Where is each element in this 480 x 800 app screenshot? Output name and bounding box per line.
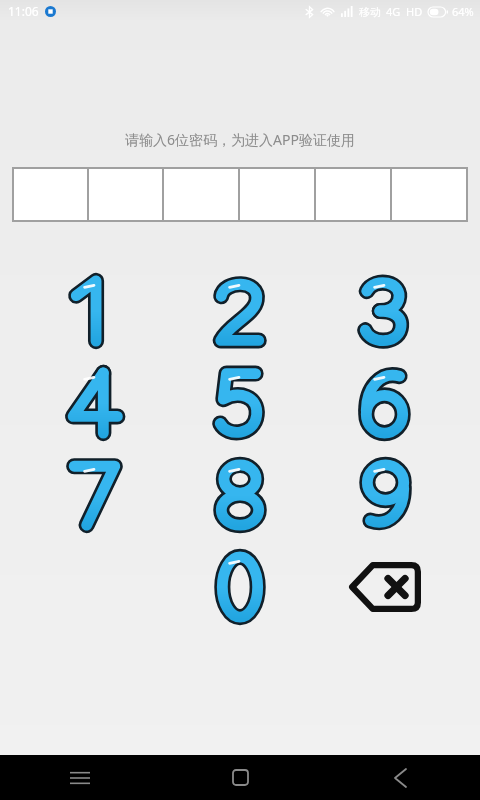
staticText: HD [406,4,423,19]
button[interactable] [13,168,88,221]
button[interactable] [239,168,315,221]
button[interactable]: Backspace [337,541,433,633]
staticText: 64% [452,4,474,19]
staticText: 11:06 [8,3,39,19]
button[interactable]: Back [320,755,480,800]
staticText: 请输入6位密码，为进入APP验证使用 [125,130,355,149]
button[interactable] [337,265,433,357]
button[interactable]: Home [160,755,320,800]
button[interactable] [337,449,433,541]
button[interactable] [192,265,288,357]
button[interactable] [47,357,143,449]
button[interactable] [391,168,467,221]
staticText: 移动 [359,5,381,19]
button[interactable] [47,449,143,541]
button[interactable] [192,357,288,449]
button[interactable] [337,357,433,449]
button[interactable] [47,265,143,357]
button[interactable]: Menu [0,755,160,800]
staticText: 4G [386,4,401,19]
button[interactable] [192,541,288,633]
button[interactable] [192,449,288,541]
button[interactable] [88,168,163,221]
button[interactable] [315,168,391,221]
button[interactable] [163,168,239,221]
